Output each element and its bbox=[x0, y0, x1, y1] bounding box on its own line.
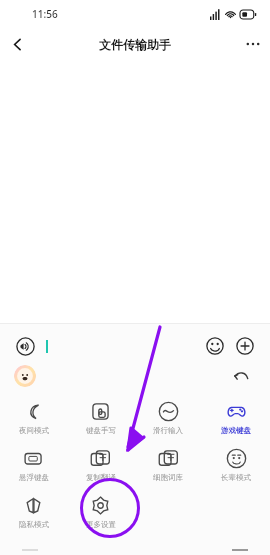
staticText: 悬浮键盘 bbox=[19, 473, 49, 482]
button[interactable]: More options bbox=[236, 28, 270, 60]
button[interactable]: Add bbox=[232, 333, 258, 359]
staticText: 11:56 bbox=[32, 7, 58, 21]
staticText: 细胞词库 bbox=[153, 473, 183, 482]
staticText: 滑行输入 bbox=[153, 426, 183, 435]
button[interactable]: 游戏键盘 bbox=[202, 399, 270, 437]
staticText: 长辈模式 bbox=[221, 473, 251, 482]
button[interactable]: Emoji bbox=[202, 333, 228, 359]
button[interactable]: 复制翻译 bbox=[67, 446, 134, 484]
button[interactable]: 滑行输入 bbox=[134, 399, 202, 437]
staticText: 隐私模式 bbox=[19, 520, 49, 529]
staticText: 键盘手写 bbox=[86, 426, 116, 435]
button[interactable]: Sticker avatar bbox=[14, 365, 36, 387]
button[interactable]: 键盘手写 bbox=[67, 399, 134, 437]
button[interactable]: 更多设置 bbox=[67, 493, 134, 531]
button[interactable]: 隐私模式 bbox=[0, 493, 67, 531]
button[interactable]: Undo bbox=[228, 363, 254, 389]
button[interactable]: 长辈模式 bbox=[202, 446, 270, 484]
button[interactable]: 悬浮键盘 bbox=[0, 446, 67, 484]
button[interactable]: 夜间模式 bbox=[0, 399, 67, 437]
button[interactable]: Back bbox=[0, 28, 34, 60]
staticText: 更多设置 bbox=[86, 520, 116, 529]
staticText: 夜间模式 bbox=[19, 426, 49, 435]
staticText: 文件传输助手 bbox=[99, 37, 171, 52]
button[interactable]: 细胞词库 bbox=[134, 446, 202, 484]
staticText: 复制翻译 bbox=[86, 473, 116, 482]
button[interactable]: Voice input bbox=[12, 333, 38, 359]
staticText: 游戏键盘 bbox=[221, 426, 251, 435]
